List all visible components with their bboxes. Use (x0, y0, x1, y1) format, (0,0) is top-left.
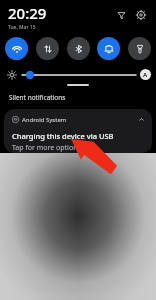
button[interactable] (20, 69, 138, 81)
staticText: A (143, 71, 148, 79)
staticText: Tue, Mar 15 (8, 24, 36, 31)
button[interactable]: Bluetooth (67, 37, 90, 60)
button[interactable]: Android System (4, 109, 152, 153)
button[interactable]: Do not disturb (97, 37, 120, 60)
button[interactable]: Collapse (137, 115, 146, 124)
staticText: 20:29 (8, 3, 47, 23)
button[interactable]: Wi‑Fi (5, 37, 28, 60)
staticText: Charging this device via USB (12, 131, 114, 141)
staticText: Silent notifications (9, 93, 66, 102)
button[interactable]: Settings (133, 7, 149, 23)
button[interactable]: Mobile data (36, 37, 59, 60)
button[interactable]: Flashlight (128, 37, 151, 60)
staticText: Android System (22, 116, 67, 124)
staticText: Tap for more options. (12, 143, 83, 153)
button[interactable]: Auto brightness (140, 69, 151, 80)
button[interactable]: Manage notification history (113, 7, 129, 23)
